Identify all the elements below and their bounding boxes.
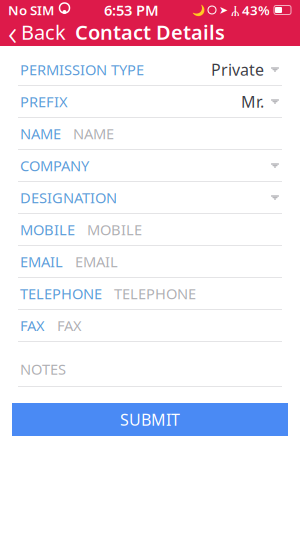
staticText: COMPANY (20, 156, 89, 175)
staticText: Mr. (241, 91, 264, 112)
staticText: SUBMIT (120, 409, 180, 430)
button[interactable]: SUBMIT (12, 403, 288, 436)
staticText: Contact Details (75, 19, 225, 45)
staticText: NAME (20, 124, 61, 143)
staticText: 6:53 PM (104, 0, 159, 20)
staticText: PREFIX (20, 92, 68, 111)
staticText: TELEPHONE (114, 284, 196, 303)
staticText: EMAIL (20, 252, 63, 271)
staticText: ᛦ (231, 3, 239, 17)
button[interactable]: ‹ (0, 17, 74, 47)
staticText: TELEPHONE (20, 284, 102, 303)
staticText: NOTES (20, 359, 66, 379)
staticText: MOBILE (20, 220, 75, 239)
staticText: No SIM (8, 1, 54, 19)
staticText: PERMISSION TYPE (20, 60, 144, 79)
staticText: ➤ (219, 4, 228, 16)
button[interactable]: EMAIL (0, 246, 300, 278)
button[interactable]: PERMISSION TYPE (0, 54, 300, 86)
button[interactable]: NOTES (0, 342, 300, 387)
button[interactable]: PREFIX (0, 86, 300, 118)
button[interactable]: NAME (0, 118, 300, 150)
button[interactable]: TELEPHONE (0, 278, 300, 310)
staticText: FAX (20, 316, 45, 335)
staticText: ‹ (8, 9, 17, 55)
staticText: DESIGNATION (20, 188, 117, 207)
staticText: NAME (73, 124, 114, 143)
staticText: 🌙 (192, 4, 205, 16)
button[interactable]: MOBILE (0, 214, 300, 246)
staticText: EMAIL (75, 252, 118, 271)
button[interactable]: FAX (0, 310, 300, 342)
staticText: FAX (57, 316, 82, 335)
staticText: 43% (242, 1, 270, 19)
button[interactable]: DESIGNATION (0, 182, 300, 214)
staticText: Back (21, 19, 66, 45)
staticText: MOBILE (87, 220, 142, 239)
button[interactable]: COMPANY (0, 150, 300, 182)
staticText: Private (211, 59, 264, 80)
